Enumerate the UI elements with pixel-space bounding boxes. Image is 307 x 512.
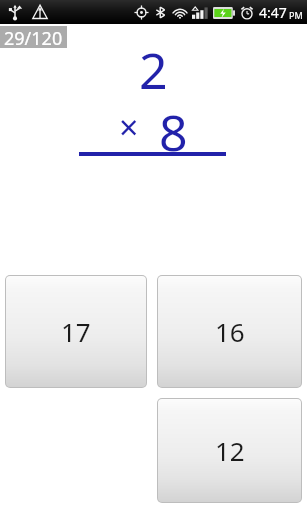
other: Alarm set (240, 6, 254, 20)
button[interactable]: 17 (6, 276, 146, 387)
staticText: 4:47 (259, 3, 287, 22)
staticText: × (119, 104, 139, 150)
other: Battery charging (213, 7, 235, 19)
button[interactable]: 29/120 (0, 26, 67, 48)
other: Developer mode (31, 3, 49, 21)
staticText: 8 (159, 98, 188, 156)
staticText: 2 (139, 36, 168, 94)
other: USB connected (6, 3, 24, 21)
staticText: 16 (215, 314, 245, 349)
other: GPS (134, 5, 149, 20)
button[interactable]: 12 (158, 399, 301, 502)
other: Wi-Fi (172, 5, 188, 21)
other: Bluetooth (154, 6, 167, 19)
staticText: 17 (61, 314, 91, 349)
staticText: 29/120 (4, 26, 63, 48)
button[interactable]: 16 (158, 276, 301, 387)
other: Mobile signal (192, 6, 208, 20)
staticText: 12 (215, 433, 245, 468)
staticText: PM (289, 9, 303, 21)
